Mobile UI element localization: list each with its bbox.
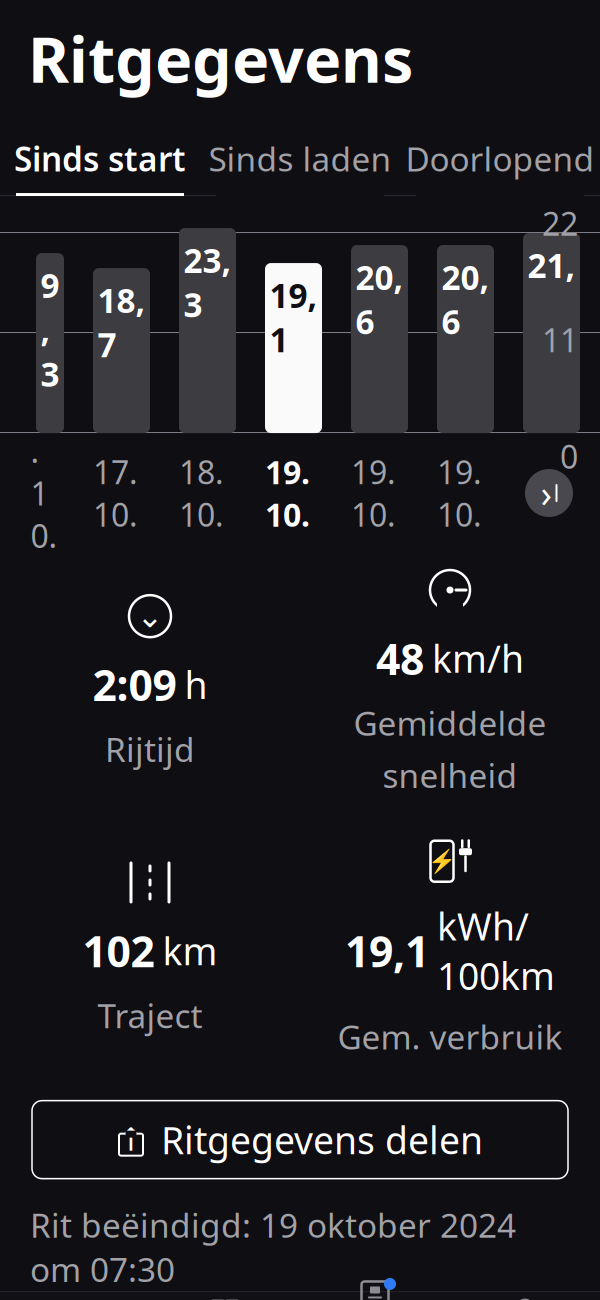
staticText: 19,1	[345, 922, 429, 979]
staticText: 9,3	[40, 263, 59, 396]
staticText: 17.10.	[93, 450, 138, 535]
button[interactable]: ↑	[32, 1101, 568, 1179]
button[interactable]: Sinds laden	[200, 124, 400, 196]
staticText: h	[184, 660, 207, 709]
staticText: 102	[82, 922, 154, 979]
staticText: Sinds laden	[208, 136, 391, 181]
staticText: 18,7	[97, 278, 145, 366]
staticText: 21,	[527, 243, 575, 287]
staticText: kWh/100km	[437, 901, 555, 1000]
staticText: Gem. verbruik	[337, 1014, 562, 1059]
staticText: Rit beëindigd: 19 oktober 2024 om 07:30	[30, 1203, 516, 1291]
staticText: Ritgegevens delen	[161, 1115, 483, 1164]
staticText: .10.	[30, 429, 57, 557]
staticText: km	[162, 926, 217, 976]
staticText: Ritgegevens	[28, 17, 413, 100]
staticText: 48	[376, 630, 424, 687]
staticText: 22	[542, 202, 578, 244]
staticText: km/h	[432, 634, 524, 683]
staticText: 19.10.	[351, 450, 396, 535]
staticText: ⌄	[136, 598, 163, 634]
staticText: Gemiddelde	[353, 701, 546, 745]
staticText: 19.10.	[265, 450, 310, 535]
staticText: 19.10.	[437, 450, 482, 535]
staticText: 20,6	[441, 255, 489, 343]
staticText: 0	[560, 435, 578, 477]
staticText: 2:09	[92, 656, 176, 713]
staticText: 23,3	[183, 238, 231, 326]
staticText: ⚡	[428, 848, 456, 874]
staticText: 11	[542, 318, 578, 361]
staticText: snelheid	[382, 753, 517, 797]
button[interactable]: Sinds start	[0, 124, 200, 196]
staticText: ↑	[117, 1121, 144, 1158]
button[interactable]: Next day	[522, 466, 576, 520]
staticText: Rijtijd	[105, 727, 195, 771]
button[interactable]: Doorlopend	[400, 124, 600, 196]
staticText: 18.10.	[179, 450, 224, 535]
staticText: Sinds start	[14, 136, 186, 181]
staticText: 19,1	[269, 273, 317, 361]
staticText: Traject	[97, 993, 202, 1037]
staticText: ›	[540, 468, 552, 518]
staticText: Doorlopend	[405, 136, 594, 181]
staticText: 20,6	[355, 255, 403, 343]
